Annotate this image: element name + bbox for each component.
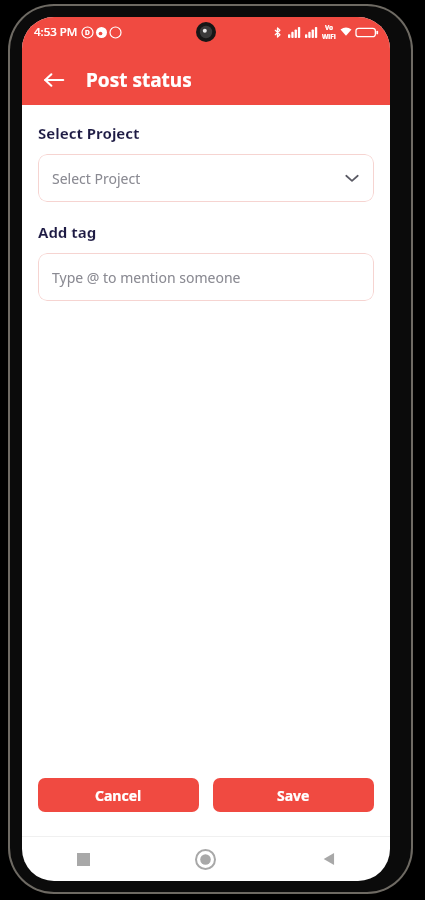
button[interactable]: Home	[144, 837, 267, 881]
staticText: Add tag	[38, 222, 97, 242]
staticText: Post status	[86, 67, 192, 93]
staticText: Vo	[325, 23, 334, 32]
staticText: Type @ to mention someone	[52, 268, 241, 287]
button[interactable]: Save	[213, 778, 374, 812]
button[interactable]: Recent apps	[22, 837, 144, 881]
button[interactable]: Type @ to mention someone	[38, 253, 374, 301]
staticText: D	[85, 28, 90, 37]
staticText: Select Project	[52, 169, 344, 188]
staticText: Cancel	[95, 786, 142, 805]
staticText: 4:53 PM	[34, 24, 78, 40]
staticText: WiFi	[322, 32, 336, 41]
button[interactable]: Back	[32, 58, 76, 102]
button[interactable]: Select Project	[38, 154, 374, 202]
staticText: Select Project	[38, 123, 140, 143]
button[interactable]: Cancel	[38, 778, 199, 812]
staticText: Save	[277, 786, 310, 805]
button[interactable]: Back	[267, 837, 390, 881]
